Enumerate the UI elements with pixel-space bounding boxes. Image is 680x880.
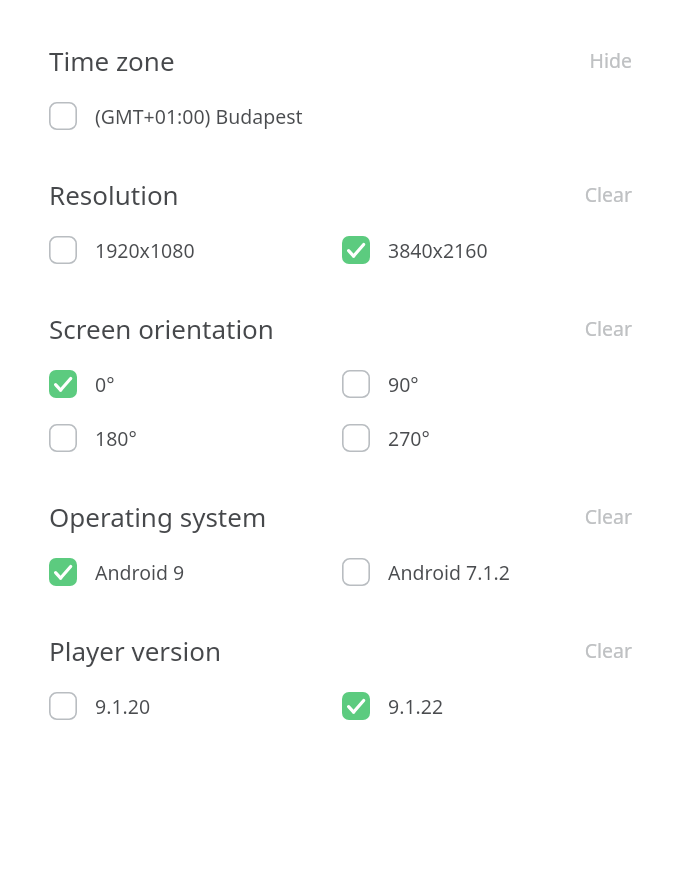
button[interactable]: Hide	[581, 47, 632, 74]
button[interactable]: Clear	[576, 637, 632, 664]
staticText: Clear	[584, 315, 632, 342]
button[interactable]: Clear	[576, 503, 632, 530]
staticText: 180°	[95, 425, 137, 452]
staticText: Operating system	[49, 499, 576, 534]
staticText: 3840x2160	[388, 237, 488, 264]
button[interactable]: 9.1.20	[49, 692, 151, 720]
staticText: Resolution	[49, 177, 576, 212]
button[interactable]: Android 7.1.2	[342, 558, 510, 586]
staticText: Screen orientation	[49, 311, 576, 346]
staticText: 270°	[388, 425, 430, 452]
button[interactable]: 270°	[342, 424, 430, 452]
button[interactable]: 3840x2160	[342, 236, 488, 264]
staticText: Clear	[584, 181, 632, 208]
staticText: 9.1.20	[95, 693, 151, 720]
staticText: Clear	[584, 503, 632, 530]
staticText: Player version	[49, 633, 576, 668]
button[interactable]: Clear	[576, 181, 632, 208]
staticText: 1920x1080	[95, 237, 195, 264]
staticText: Time zone	[49, 43, 581, 78]
button[interactable]: 0°	[49, 370, 115, 398]
button[interactable]: 1920x1080	[49, 236, 195, 264]
button[interactable]: 9.1.22	[342, 692, 444, 720]
staticText: Hide	[589, 47, 632, 74]
staticText: 0°	[95, 371, 115, 398]
button[interactable]: 90°	[342, 370, 419, 398]
button[interactable]: 180°	[49, 424, 137, 452]
staticText: (GMT+01:00) Budapest	[95, 103, 303, 130]
button[interactable]: (GMT+01:00) Budapest	[49, 102, 303, 130]
staticText: Android 9	[95, 559, 185, 586]
staticText: Clear	[584, 637, 632, 664]
staticText: Android 7.1.2	[388, 559, 510, 586]
staticText: 9.1.22	[388, 693, 444, 720]
button[interactable]: Android 9	[49, 558, 185, 586]
button[interactable]: Clear	[576, 315, 632, 342]
staticText: 90°	[388, 371, 419, 398]
